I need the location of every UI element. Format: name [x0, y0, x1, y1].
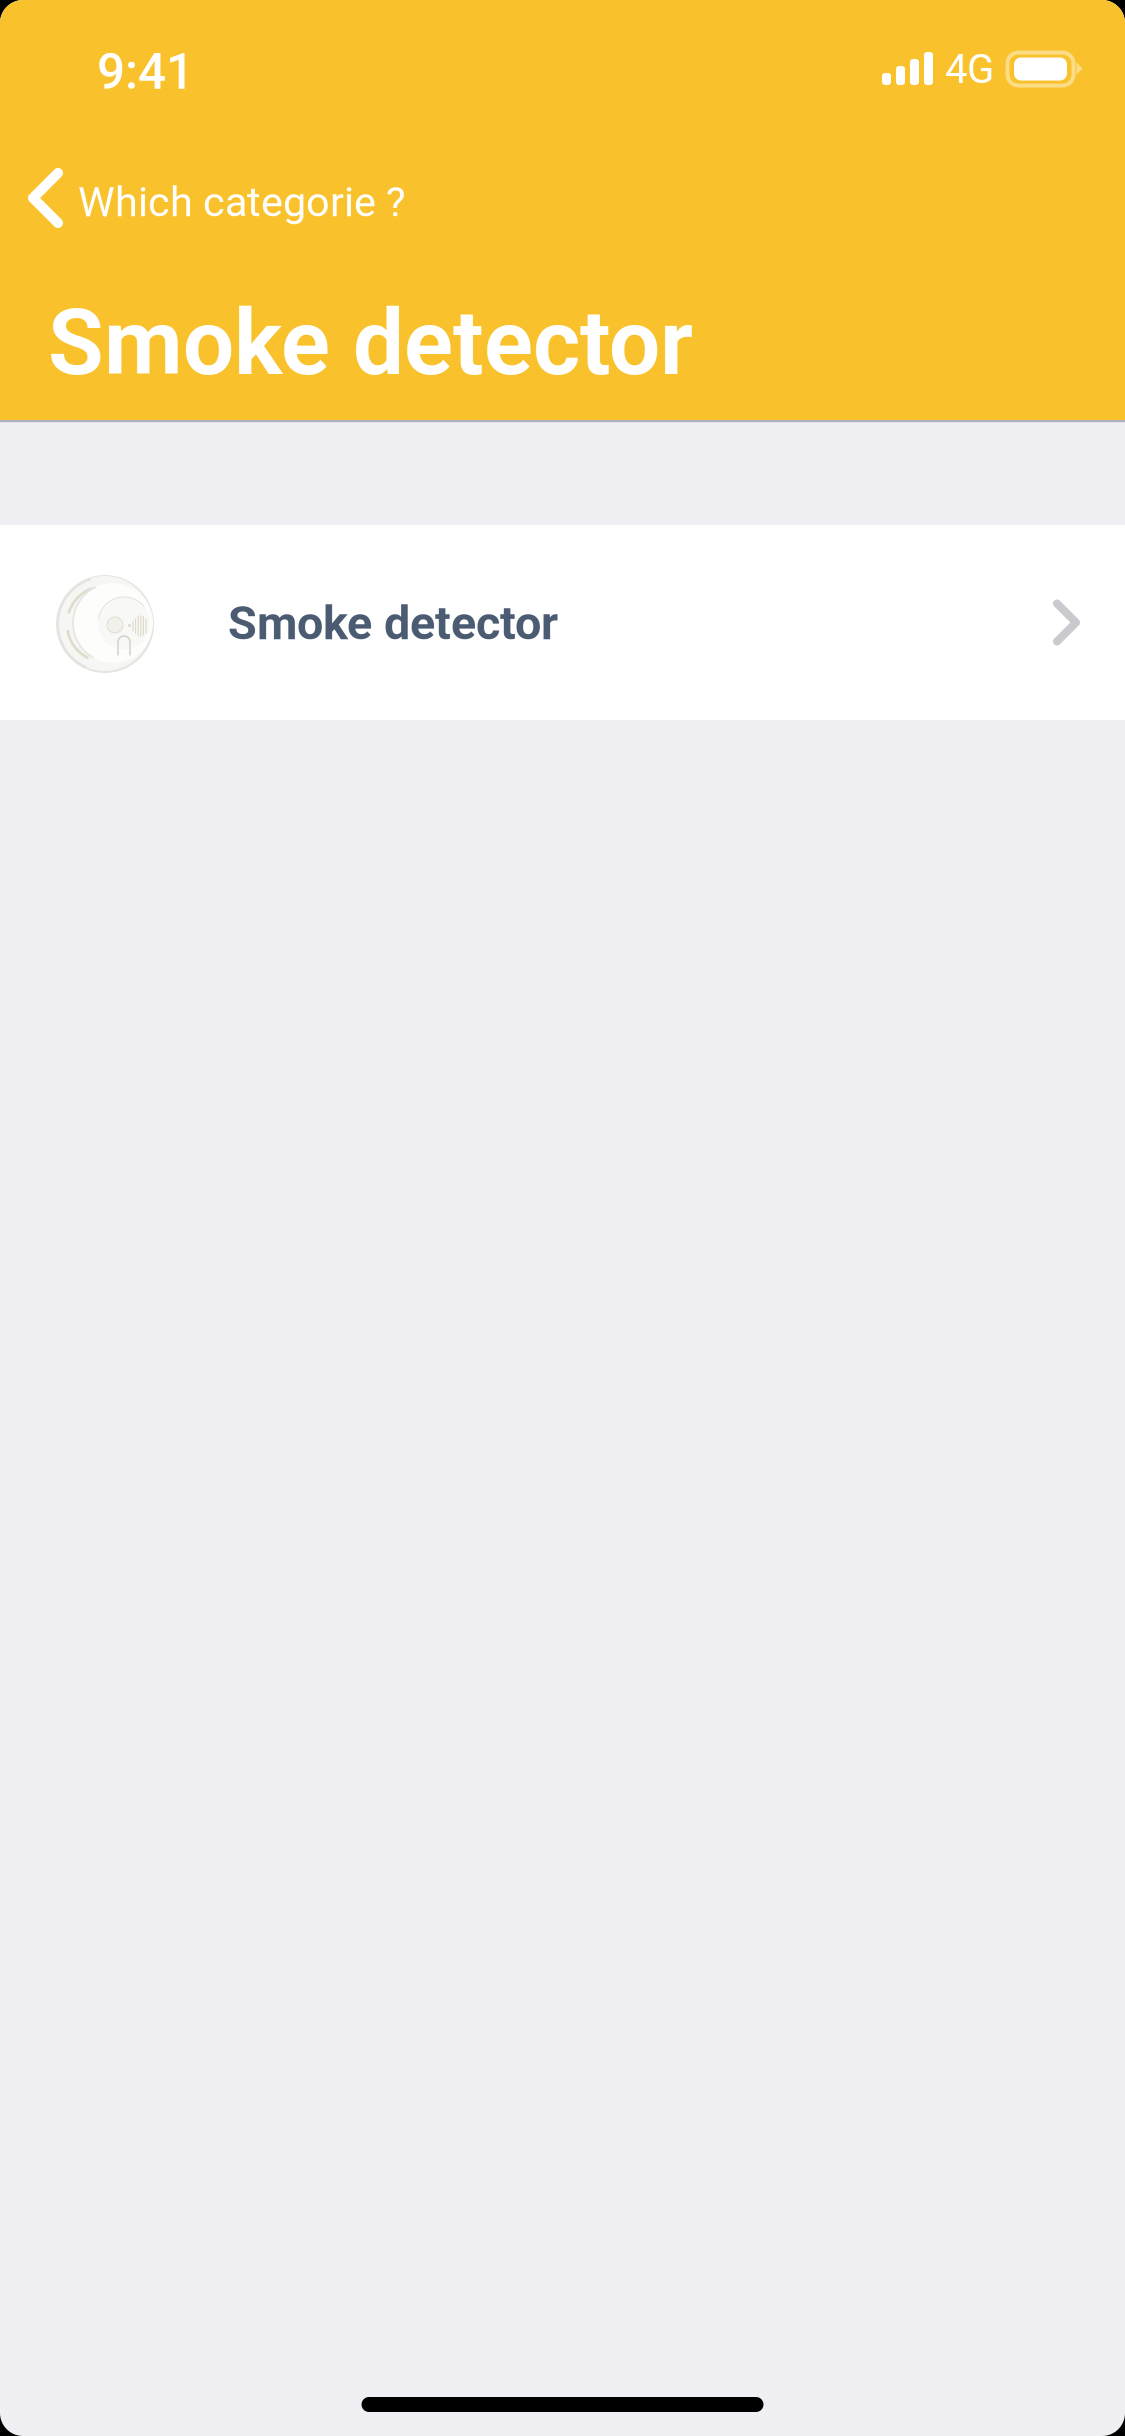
staticText: 4G — [945, 46, 994, 93]
button[interactable]: Smoke detector — [0, 525, 1125, 720]
staticText: Smoke detector — [48, 290, 693, 396]
staticText: Smoke detector — [228, 596, 558, 651]
staticText: 9:41 — [97, 43, 194, 101]
staticText: Which categorie ? — [78, 178, 406, 226]
button[interactable]: Which categorie ? — [0, 0, 490, 246]
